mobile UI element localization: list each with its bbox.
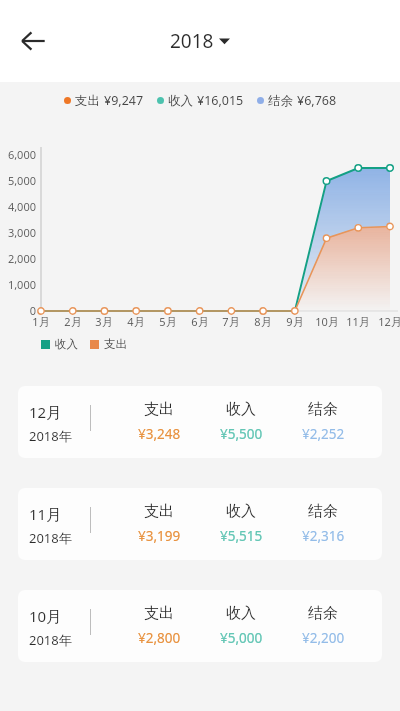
staticText: 9月 bbox=[279, 314, 311, 329]
staticText: 支出 bbox=[144, 502, 174, 521]
staticText: 7月 bbox=[215, 314, 247, 329]
staticText: 11月 bbox=[342, 314, 374, 329]
staticText: 收入 bbox=[168, 93, 193, 109]
staticText: ¥16,015 bbox=[197, 92, 244, 109]
staticText: 11月 bbox=[29, 504, 62, 524]
staticText: 2018年 bbox=[29, 427, 72, 445]
staticText: 收入 bbox=[226, 502, 256, 521]
staticText: 1,000 bbox=[0, 277, 36, 292]
staticText: 6月 bbox=[184, 314, 216, 329]
staticText: 收入 bbox=[226, 604, 256, 623]
staticText: ¥2,200 bbox=[302, 629, 345, 647]
staticText: ¥5,500 bbox=[220, 425, 263, 443]
button[interactable]: 11月 bbox=[18, 488, 382, 560]
staticText: 8月 bbox=[247, 314, 279, 329]
staticText: 12月 bbox=[29, 402, 62, 422]
staticText: 3月 bbox=[88, 314, 120, 329]
button[interactable]: 2018 bbox=[170, 28, 230, 54]
staticText: 4,000 bbox=[0, 199, 36, 214]
staticText: ¥2,800 bbox=[138, 629, 181, 647]
staticText: 结余 bbox=[308, 604, 338, 623]
button[interactable]: Back bbox=[8, 16, 58, 66]
staticText: ¥5,000 bbox=[220, 629, 263, 647]
staticText: ¥6,768 bbox=[297, 92, 337, 109]
staticText: 支出 bbox=[144, 400, 174, 419]
staticText: 3,000 bbox=[0, 225, 36, 240]
staticText: 收入 bbox=[55, 337, 78, 351]
staticText: 2,000 bbox=[0, 251, 36, 266]
staticText: 6,000 bbox=[0, 147, 36, 162]
staticText: ¥3,199 bbox=[138, 527, 181, 545]
staticText: 0 bbox=[0, 303, 36, 318]
staticText: 12月 bbox=[374, 314, 400, 329]
staticText: 10月 bbox=[311, 314, 343, 329]
staticText: 2月 bbox=[57, 314, 89, 329]
staticText: 收入 bbox=[226, 400, 256, 419]
staticText: 支出 bbox=[75, 93, 100, 109]
staticText: ¥9,247 bbox=[104, 92, 144, 109]
staticText: ¥5,515 bbox=[220, 527, 263, 545]
staticText: 结余 bbox=[268, 93, 293, 109]
button[interactable]: 12月 bbox=[18, 386, 382, 458]
staticText: 结余 bbox=[308, 400, 338, 419]
staticText: 结余 bbox=[308, 502, 338, 521]
staticText: ¥3,248 bbox=[138, 425, 181, 443]
staticText: 5,000 bbox=[0, 173, 36, 188]
staticText: ¥2,252 bbox=[302, 425, 345, 443]
staticText: 支出 bbox=[104, 337, 127, 351]
staticText: 2018 bbox=[170, 28, 214, 54]
staticText: 5月 bbox=[152, 314, 184, 329]
staticText: 支出 bbox=[144, 604, 174, 623]
staticText: ¥2,316 bbox=[302, 527, 345, 545]
button[interactable]: 10月 bbox=[18, 590, 382, 662]
staticText: 2018年 bbox=[29, 529, 72, 547]
staticText: 1月 bbox=[25, 314, 57, 329]
staticText: 10月 bbox=[29, 606, 62, 626]
staticText: 4月 bbox=[120, 314, 152, 329]
staticText: 2018年 bbox=[29, 631, 72, 649]
